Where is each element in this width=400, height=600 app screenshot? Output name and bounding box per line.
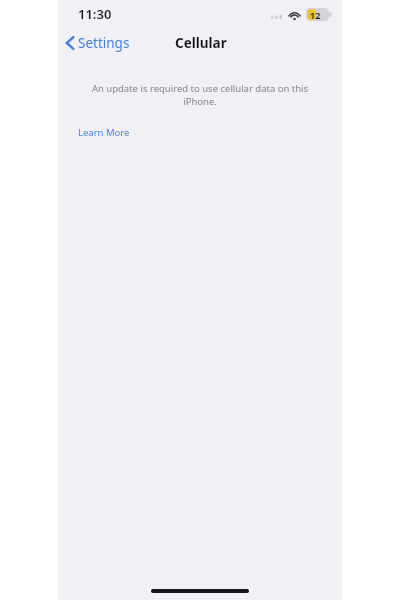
button[interactable]: Settings [58, 32, 138, 54]
button[interactable]: Learn More [70, 122, 138, 143]
staticText: Learn More [78, 126, 130, 139]
staticText: 11:30 [78, 5, 112, 23]
staticText: An update is required to use cellular da… [80, 82, 320, 108]
staticText: Settings [78, 34, 130, 52]
staticText: Cellular [175, 34, 227, 52]
staticText: 12 [310, 9, 321, 21]
